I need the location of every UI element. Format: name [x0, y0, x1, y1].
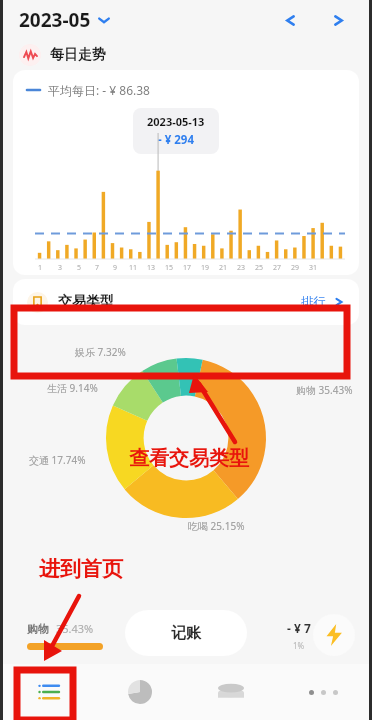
staticText: 3 — [58, 263, 63, 273]
staticText: 27 — [273, 263, 282, 273]
staticText: 购物 35.43% — [296, 383, 353, 397]
staticText: 5 — [77, 263, 82, 273]
button[interactable]: 2023-05 — [19, 7, 117, 33]
button[interactable]: 平均每日: - ¥ 86.38 — [13, 70, 359, 275]
button[interactable]: 交易类型 — [13, 279, 359, 325]
staticText: 25 — [255, 263, 264, 273]
button[interactable]: Previous month — [275, 5, 305, 35]
staticText: 29 — [291, 263, 300, 273]
staticText: 2023-05-13 — [147, 114, 205, 129]
staticText: 进到首页 — [39, 556, 123, 582]
staticText: 排行 — [301, 294, 326, 310]
button[interactable]: Quick add — [313, 614, 355, 656]
button[interactable]: Assets — [185, 664, 277, 720]
staticText: - ¥ 7 — [287, 620, 311, 636]
button[interactable]: Statistics — [94, 664, 185, 720]
staticText: 15 — [165, 263, 174, 273]
button[interactable]: Next month — [323, 5, 353, 35]
staticText: 7 — [95, 263, 100, 273]
staticText: 每日走势 — [50, 46, 106, 64]
staticText: 生活 9.14% — [47, 381, 98, 395]
staticText: 9 — [113, 263, 118, 273]
staticText: 1 — [38, 263, 43, 273]
staticText: 查看交易类型 — [129, 446, 249, 471]
staticText: 交易类型 — [58, 293, 114, 311]
staticText: 35.43% — [56, 621, 94, 636]
staticText: 31 — [309, 263, 318, 273]
staticText: 购物 — [27, 622, 49, 636]
staticText: 19 — [201, 263, 210, 273]
staticText: 2023-05 — [19, 7, 91, 33]
staticText: - ¥ 294 — [158, 132, 194, 148]
staticText: 记账 — [171, 624, 201, 643]
staticText: 23 — [237, 263, 246, 273]
staticText: 交通 17.74% — [29, 453, 86, 467]
button[interactable]: More — [277, 664, 369, 720]
staticText: 17 — [183, 263, 192, 273]
staticText: 21 — [219, 263, 228, 273]
button[interactable]: List — [3, 664, 94, 720]
staticText: 吃喝 25.15% — [188, 519, 245, 533]
staticText: 平均每日: - ¥ 86.38 — [48, 82, 150, 98]
staticText: 13 — [147, 263, 156, 273]
staticText: 1% — [293, 640, 305, 651]
button[interactable]: 记账 — [125, 610, 247, 656]
staticText: 11 — [129, 263, 138, 273]
staticText: 娱乐 7.32% — [75, 345, 126, 359]
